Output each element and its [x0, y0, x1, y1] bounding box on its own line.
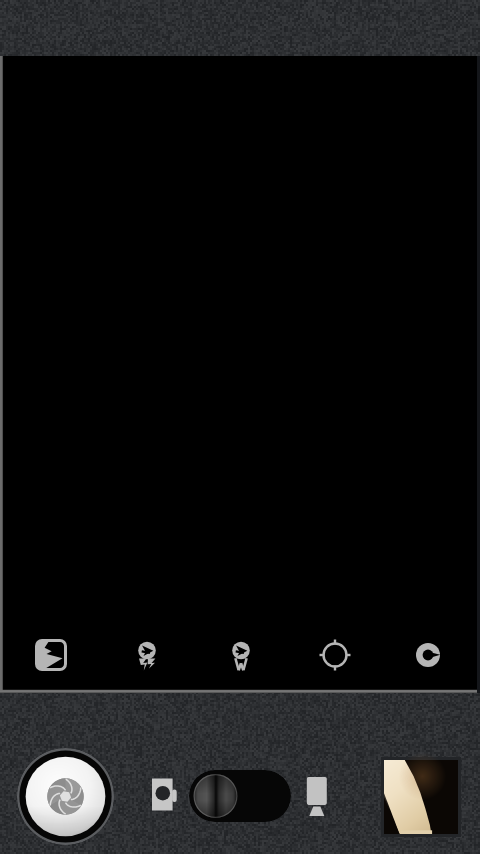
button[interactable]: Switch between camera and video	[189, 770, 291, 822]
button[interactable]: White balance	[213, 629, 269, 681]
button[interactable]: Focus mode	[307, 629, 363, 681]
button[interactable]: Camera mode	[148, 776, 180, 812]
button[interactable]: Shutter	[17, 748, 114, 845]
button[interactable]: Video mode	[302, 774, 330, 818]
button[interactable]: Camera preview, tap to focus	[0, 56, 480, 693]
button[interactable]: Camera settings	[400, 629, 456, 681]
button[interactable]: Flash mode	[119, 629, 175, 681]
button[interactable]: Review last photo	[381, 757, 461, 837]
button[interactable]: Exposure	[23, 629, 79, 681]
